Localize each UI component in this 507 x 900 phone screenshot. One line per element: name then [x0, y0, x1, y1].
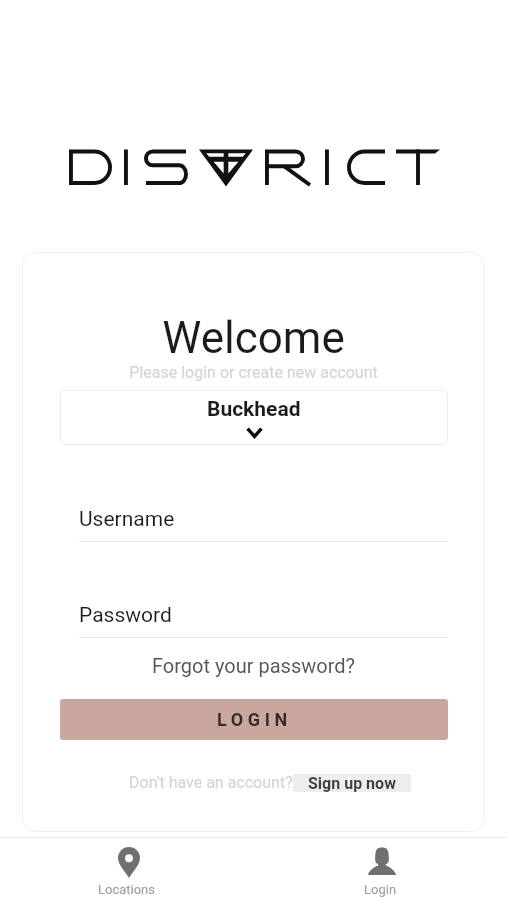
staticText: Login [364, 882, 397, 897]
button[interactable]: Sign up now [293, 774, 411, 792]
staticText: LOGIN [217, 709, 292, 730]
staticText: Please login or create new account [22, 363, 485, 382]
button[interactable]: Buckhead [60, 390, 448, 445]
staticText: Buckhead [207, 397, 301, 422]
button[interactable]: Locations [0, 838, 253, 900]
button[interactable]: Forgot your password? [22, 654, 485, 677]
button[interactable]: LOGIN [60, 699, 448, 740]
staticText: Welcome [22, 312, 485, 364]
button[interactable]: Login [253, 838, 507, 900]
other: DISTRICT [68, 148, 443, 188]
staticText: Don't have an account? [129, 773, 293, 792]
staticText: Username [79, 507, 175, 532]
staticText: Locations [98, 882, 156, 897]
staticText: Password [79, 603, 172, 628]
staticText: Sign up now [308, 774, 396, 792]
